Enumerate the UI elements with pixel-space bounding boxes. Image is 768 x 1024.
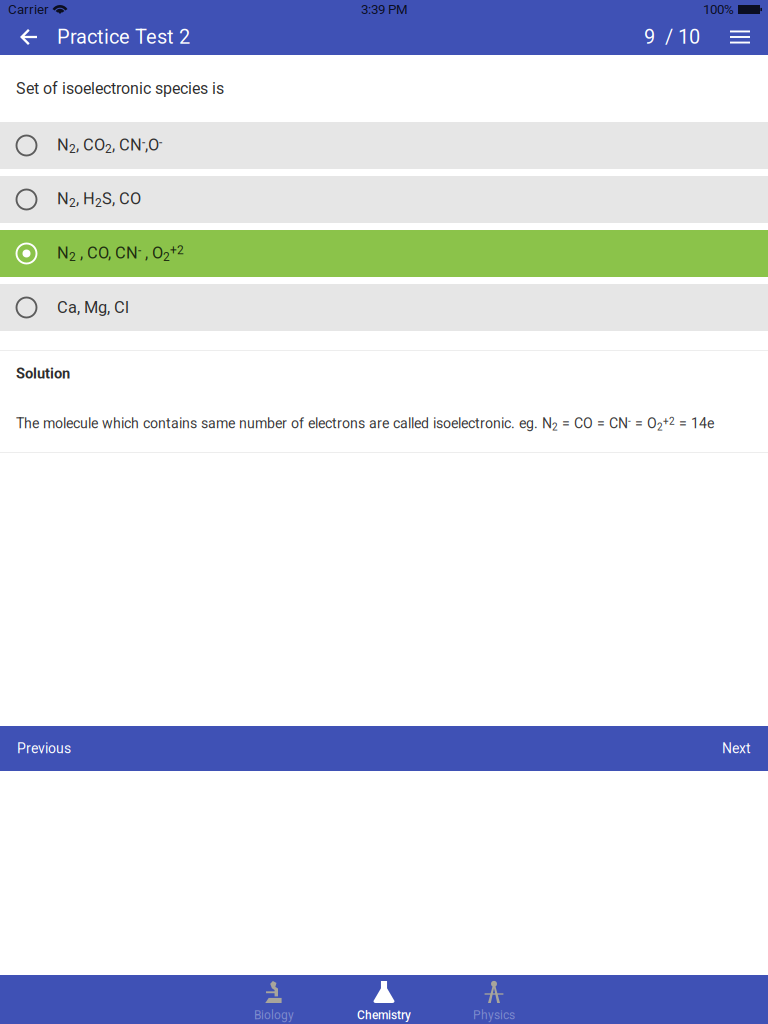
- button[interactable]: Previous: [0, 726, 101, 771]
- button[interactable]: N2, H2S, CO: [0, 176, 768, 223]
- staticText: N2, H2S, CO: [57, 189, 141, 210]
- staticText: Carrier: [8, 2, 49, 17]
- staticText: Practice Test 2: [57, 25, 190, 49]
- staticText: Biology: [254, 1008, 294, 1022]
- button[interactable]: N2 , CO, CN- , O2+2: [0, 230, 768, 277]
- staticText: Next: [722, 740, 751, 757]
- button[interactable]: Physics: [439, 975, 549, 1024]
- button[interactable]: Next: [692, 726, 768, 771]
- button[interactable]: Chemistry: [329, 975, 439, 1024]
- staticText: Solution: [16, 365, 70, 382]
- staticText: N2, CO2, CN-,O-: [57, 135, 162, 156]
- staticText: Ca, Mg, Cl: [57, 298, 129, 317]
- button[interactable]: N2, CO2, CN-,O-: [0, 122, 768, 169]
- staticText: N2 , CO, CN- , O2+2: [57, 243, 184, 264]
- staticText: 3:39 PM: [361, 2, 408, 17]
- staticText: Physics: [473, 1008, 515, 1022]
- button[interactable]: Biology: [219, 975, 329, 1024]
- staticText: 100%: [703, 2, 734, 17]
- button[interactable]: Menu: [700, 19, 768, 55]
- staticText: The molecule which contains same number …: [16, 415, 714, 433]
- button[interactable]: Back: [0, 19, 57, 55]
- staticText: Set of isoelectronic species is: [16, 79, 224, 98]
- staticText: 9 / 10: [644, 25, 700, 49]
- staticText: Previous: [17, 740, 71, 757]
- button[interactable]: Ca, Mg, Cl: [0, 284, 768, 331]
- staticText: Chemistry: [357, 1008, 411, 1022]
